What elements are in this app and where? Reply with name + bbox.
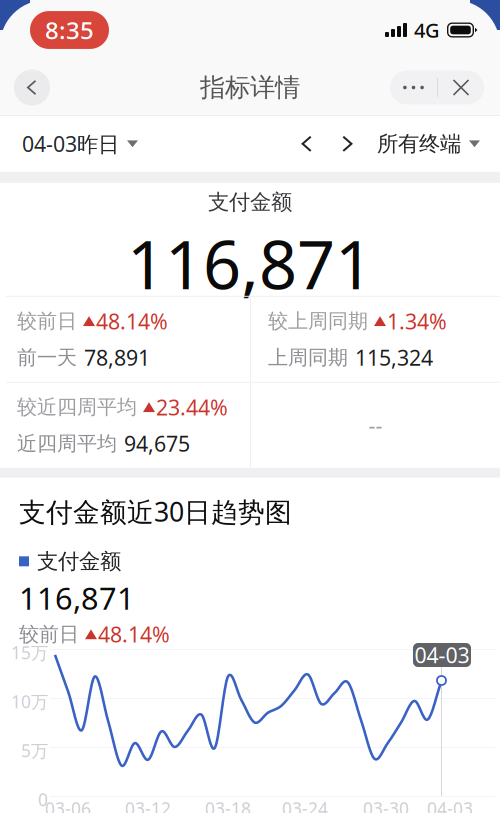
staticText: 78,891 (84, 343, 150, 372)
staticText: 03-24 (282, 797, 328, 813)
button[interactable]: Previous day (287, 126, 327, 162)
staticText: 较前日 (19, 622, 79, 647)
staticText: 支付金额近30日趋势图 (19, 494, 292, 529)
staticText: 04-03昨日 (22, 130, 119, 158)
staticText: 48.14% (98, 620, 170, 648)
staticText: 116,871 (127, 219, 373, 308)
button[interactable]: 04-03昨日 (0, 119, 138, 169)
staticText: 23.44% (156, 393, 228, 421)
staticText: 03-30 (363, 797, 409, 813)
staticText: 1.34% (387, 307, 447, 335)
staticText: 116,871 (19, 577, 135, 618)
staticText: 5万 (21, 739, 48, 762)
staticText: 94,675 (124, 429, 190, 458)
staticText: 03-06 (45, 797, 91, 813)
staticText: 支付金额 (208, 189, 292, 215)
staticText: 较近四周平均 (17, 395, 137, 419)
staticText: 较上周同期 (268, 309, 368, 333)
button[interactable]: Next day (327, 126, 367, 162)
staticText: -- (368, 411, 382, 439)
staticText: 15万 (11, 641, 48, 664)
staticText: 支付金额 (37, 548, 121, 574)
staticText: 0 (38, 788, 48, 811)
staticText: 10万 (11, 690, 48, 713)
staticText: 03-12 (125, 797, 171, 813)
staticText: 04-03 (427, 797, 473, 813)
staticText: 04-03 (414, 641, 469, 669)
staticText: 较前日 (17, 309, 77, 333)
staticText: 03-18 (205, 797, 251, 813)
staticText: 48.14% (96, 307, 168, 335)
button[interactable]: More (390, 70, 437, 104)
staticText: 115,324 (355, 343, 433, 372)
button[interactable]: 所有终端 (377, 120, 500, 168)
staticText: 所有终端 (377, 131, 461, 157)
button[interactable]: Back (14, 69, 50, 105)
staticText: 上周同期 (268, 345, 348, 370)
staticText: 指标详情 (200, 72, 300, 103)
staticText: 前一天 (17, 345, 77, 370)
staticText: 8:35 (45, 14, 94, 46)
staticText: 4G (414, 17, 440, 43)
staticText: 近四周平均 (17, 431, 117, 456)
button[interactable]: Close (438, 70, 484, 104)
